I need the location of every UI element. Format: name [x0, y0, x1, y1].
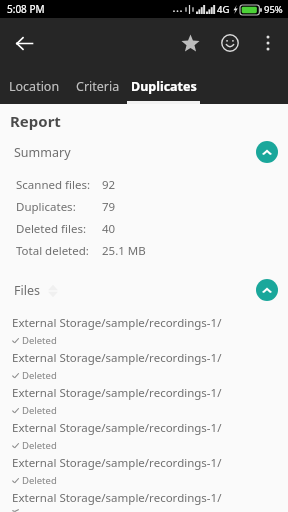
- staticText: Deleted: [22, 439, 57, 452]
- staticText: Duplicates: [131, 78, 197, 95]
- button[interactable]: Files: [0, 276, 288, 304]
- staticText: External Storage/sample/recordings-1/rec…: [12, 315, 280, 331]
- button[interactable]: Feedback: [210, 23, 250, 63]
- button[interactable]: External Storage/sample/recordings-1/rec…: [0, 487, 288, 512]
- staticText: 5:08 PM: [7, 2, 45, 16]
- button[interactable]: External Storage/sample/recordings-1/rec…: [0, 417, 288, 452]
- staticText: Report: [10, 111, 61, 131]
- button[interactable]: External Storage/sample/recordings-1/rec…: [0, 347, 288, 382]
- staticText: 25.1 MB: [102, 243, 146, 259]
- button[interactable]: Criteria: [69, 68, 127, 104]
- button[interactable]: External Storage/sample/recordings-1/rec…: [0, 382, 288, 417]
- button[interactable]: Duplicates: [127, 68, 200, 104]
- button[interactable]: Back: [6, 25, 42, 61]
- button[interactable]: Location: [0, 68, 69, 104]
- staticText: 4G: [217, 3, 230, 16]
- button[interactable]: More options: [250, 25, 286, 61]
- button[interactable]: External Storage/sample/recordings-1/rec…: [0, 452, 288, 487]
- staticText: External Storage/sample/recordings-1/rec…: [12, 385, 280, 401]
- staticText: External Storage/sample/recordings-1/rec…: [12, 350, 280, 366]
- staticText: Location: [9, 78, 60, 95]
- staticText: Duplicates:: [16, 199, 76, 215]
- staticText: Deleted files:: [16, 221, 86, 237]
- staticText: Scanned files:: [16, 177, 91, 193]
- staticText: Total deleted:: [16, 243, 89, 259]
- staticText: Deleted: [22, 474, 57, 487]
- staticText: Deleted: [22, 404, 57, 417]
- staticText: Criteria: [76, 78, 120, 95]
- button[interactable]: External Storage/sample/recordings-1/rec…: [0, 312, 288, 347]
- staticText: External Storage/sample/recordings-1/rec…: [12, 490, 280, 506]
- staticText: External Storage/sample/recordings-1/rec…: [12, 455, 280, 471]
- staticText: 40: [102, 221, 116, 237]
- staticText: Deleted: [22, 334, 57, 347]
- button[interactable]: Collapse Summary: [256, 141, 278, 163]
- staticText: External Storage/sample/recordings-1/rec…: [12, 420, 280, 436]
- staticText: Deleted: [22, 369, 57, 382]
- staticText: Summary: [14, 144, 71, 161]
- staticText: Files: [14, 282, 40, 299]
- staticText: 95%: [264, 3, 283, 16]
- button[interactable]: Summary: [0, 138, 288, 166]
- button[interactable]: Collapse Files: [256, 279, 278, 301]
- staticText: 92: [102, 177, 116, 193]
- button[interactable]: Favorite: [170, 23, 210, 63]
- staticText: 79: [102, 199, 116, 215]
